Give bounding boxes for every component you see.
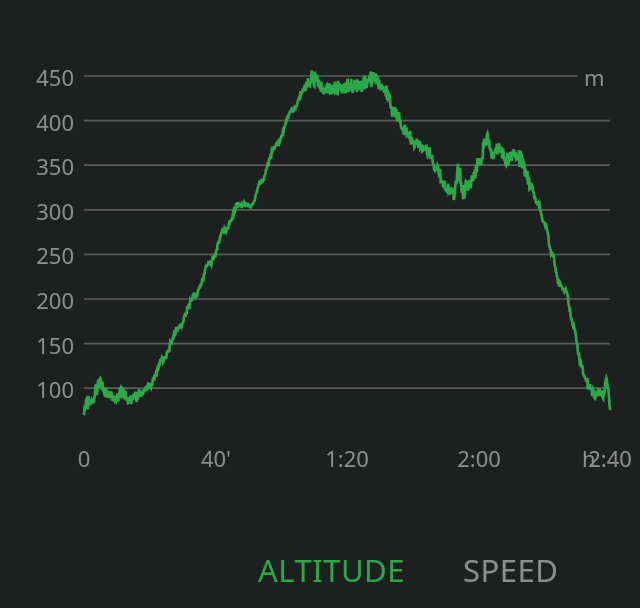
- staticText: 350: [8, 151, 74, 181]
- staticText: h: [582, 443, 596, 473]
- staticText: m: [584, 62, 605, 92]
- staticText: SPEED: [463, 549, 559, 591]
- staticText: 400: [8, 107, 74, 137]
- staticText: 40': [180, 443, 252, 473]
- staticText: 150: [8, 330, 74, 360]
- staticText: 300: [8, 196, 74, 226]
- staticText: 2:00: [443, 443, 515, 473]
- staticText: 1:20: [311, 443, 383, 473]
- staticText: 250: [8, 240, 74, 270]
- staticText: 100: [8, 374, 74, 404]
- button[interactable]: SPEED: [455, 541, 567, 599]
- staticText: 450: [8, 62, 74, 92]
- staticText: 2:40: [574, 443, 640, 473]
- button[interactable]: ALTITUDE: [250, 541, 413, 599]
- staticText: 200: [8, 285, 74, 315]
- staticText: 0: [48, 443, 120, 473]
- staticText: ALTITUDE: [258, 549, 405, 591]
